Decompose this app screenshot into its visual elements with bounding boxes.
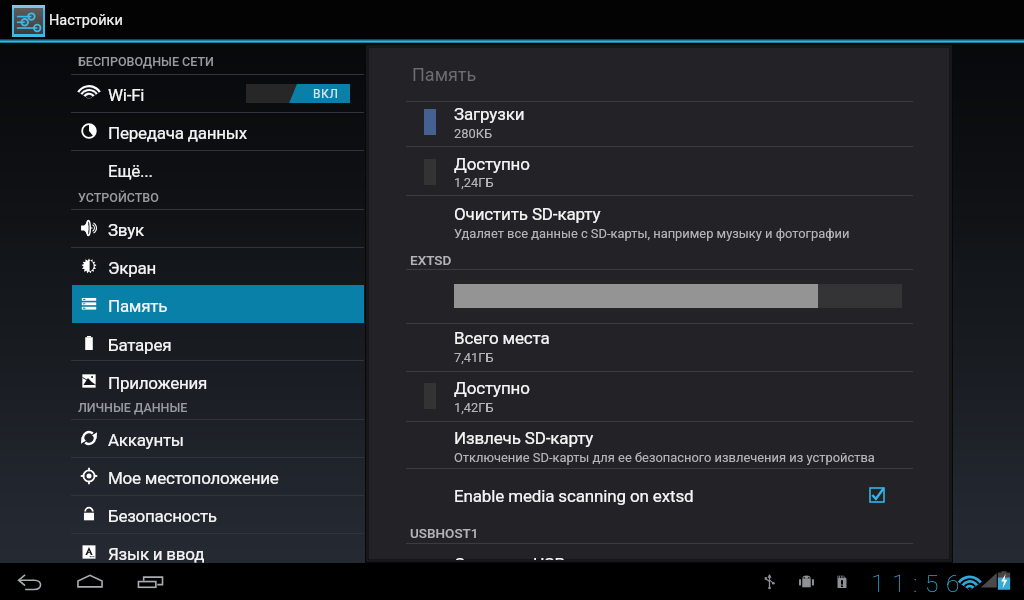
staticText: Отключение SD-карты для ее безопасного и… <box>454 450 875 465</box>
button[interactable] <box>406 196 913 244</box>
button[interactable]: Батарея <box>72 324 364 362</box>
button[interactable] <box>406 372 913 421</box>
staticText: Звук <box>108 220 144 240</box>
button[interactable] <box>406 469 913 523</box>
staticText: БЕСПРОВОДНЫЕ СЕТИ <box>78 54 214 69</box>
staticText: Батарея <box>108 335 172 355</box>
staticText: 1,42ГБ <box>454 400 494 415</box>
staticText: 280КБ <box>454 126 493 141</box>
staticText: Wi-Fi <box>108 85 145 105</box>
staticText: Память <box>412 64 477 85</box>
staticText: Приложения <box>108 373 208 393</box>
staticText: Безопасность <box>108 506 217 526</box>
staticText: Извлечь SD-карту <box>454 428 594 448</box>
staticText: 7,41ГБ <box>454 350 494 365</box>
staticText: Всего места <box>454 328 550 348</box>
button[interactable]: Аккаунты <box>72 419 364 457</box>
staticText: Очистить SD-карту <box>454 204 601 224</box>
button[interactable]: Память <box>72 285 364 323</box>
staticText: Настройки <box>49 12 123 29</box>
button[interactable]: Recent apps <box>125 563 177 600</box>
staticText: Enable media scanning on extsd <box>454 486 694 506</box>
staticText: УСТРОЙСТВО <box>78 190 159 205</box>
staticText: USBHOST1 <box>410 525 479 541</box>
button[interactable] <box>406 324 913 371</box>
button[interactable]: ВКЛ <box>246 84 350 103</box>
button[interactable]: Звук <box>72 209 364 247</box>
button[interactable]: Приложения <box>72 362 364 400</box>
staticText: ЛИЧНЫЕ ДАННЫЕ <box>78 400 188 415</box>
staticText: Экран <box>108 258 156 278</box>
button[interactable]: Ещё... <box>72 150 364 188</box>
button[interactable]: Home <box>64 563 116 600</box>
staticText: Память <box>108 296 168 316</box>
staticText: Язык и ввод <box>108 544 205 564</box>
staticText: Аккаунты <box>108 430 184 450</box>
button[interactable] <box>406 422 913 468</box>
button[interactable]: Безопасность <box>72 495 364 533</box>
staticText: Доступно <box>454 154 530 174</box>
button[interactable]: Язык и ввод <box>72 533 364 571</box>
staticText: Ещё... <box>108 161 153 181</box>
staticText: 11:56 <box>871 569 967 598</box>
button[interactable]: Settings app <box>12 5 45 37</box>
staticText: Загрузки <box>454 104 525 124</box>
staticText: 1,24ГБ <box>454 175 494 190</box>
button[interactable]: Wi-Fi <box>72 74 364 112</box>
staticText: Удаляет все данные с SD-карты, например … <box>454 226 850 241</box>
button[interactable] <box>406 102 913 147</box>
staticText: Передача данных <box>108 123 247 143</box>
button[interactable]: Мое местоположение <box>72 457 364 495</box>
staticText: Мое местоположение <box>108 468 279 488</box>
staticText: Очистить USB-накопитель <box>454 554 663 560</box>
button[interactable]: Передача данных <box>72 112 364 150</box>
staticText: Доступно <box>454 378 530 398</box>
button[interactable]: Экран <box>72 247 364 285</box>
button[interactable]: Back <box>4 563 56 600</box>
button[interactable] <box>406 147 913 195</box>
staticText: ВКЛ <box>313 87 339 101</box>
staticText: EXTSD <box>410 252 452 268</box>
